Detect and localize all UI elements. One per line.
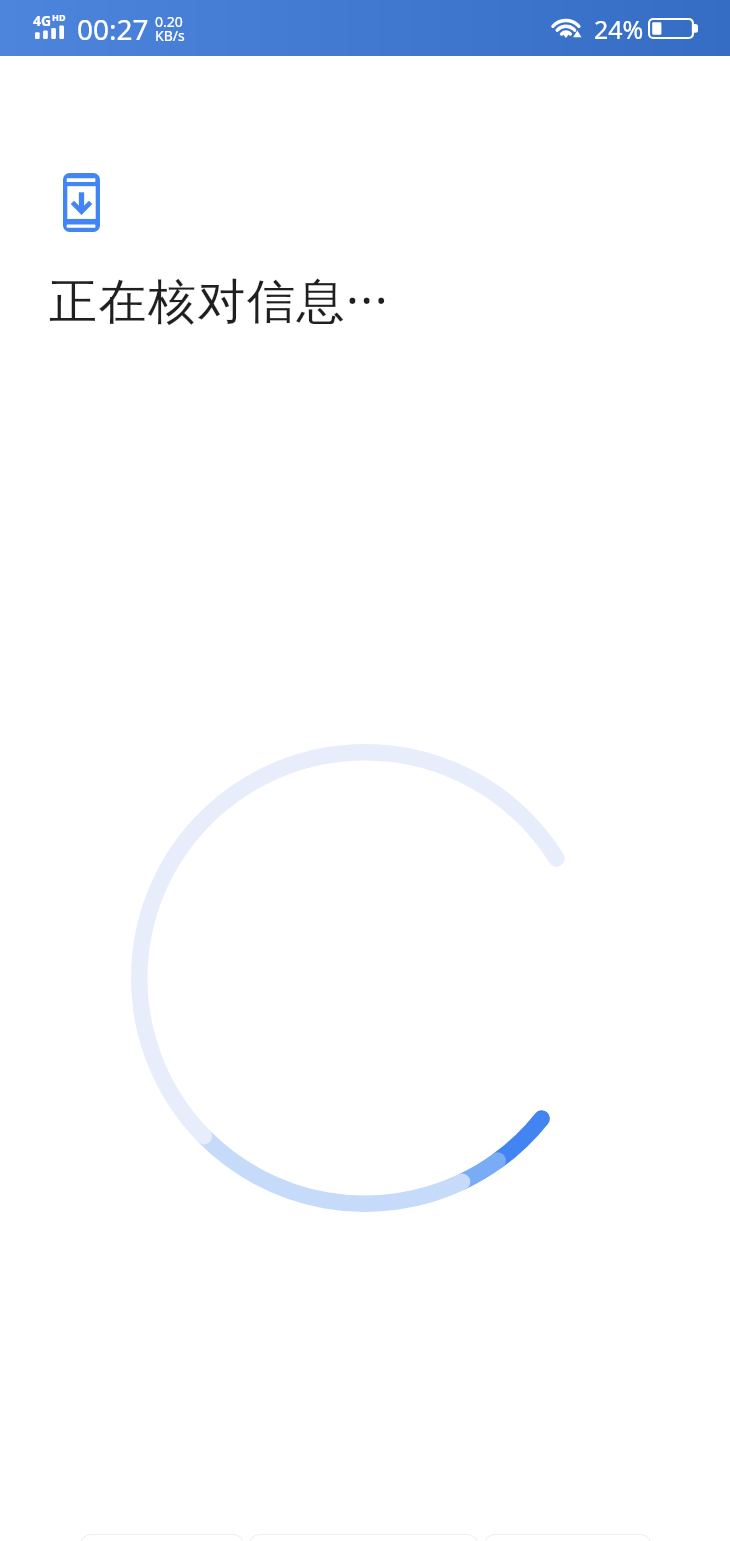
- button[interactable]: Suggestion two: [249, 1534, 478, 1541]
- staticText: 24%: [594, 12, 644, 46]
- button[interactable]: Suggestion one: [80, 1534, 244, 1541]
- staticText: HD: [52, 11, 66, 23]
- staticText: KB/s: [155, 26, 185, 45]
- staticText: 正在核对信息···: [49, 267, 390, 333]
- staticText: 0.20: [155, 12, 183, 31]
- staticText: 00:27: [77, 10, 149, 48]
- button[interactable]: Suggestion three: [484, 1534, 651, 1541]
- staticText: 4G: [33, 11, 52, 30]
- other: Device update: [63, 173, 100, 232]
